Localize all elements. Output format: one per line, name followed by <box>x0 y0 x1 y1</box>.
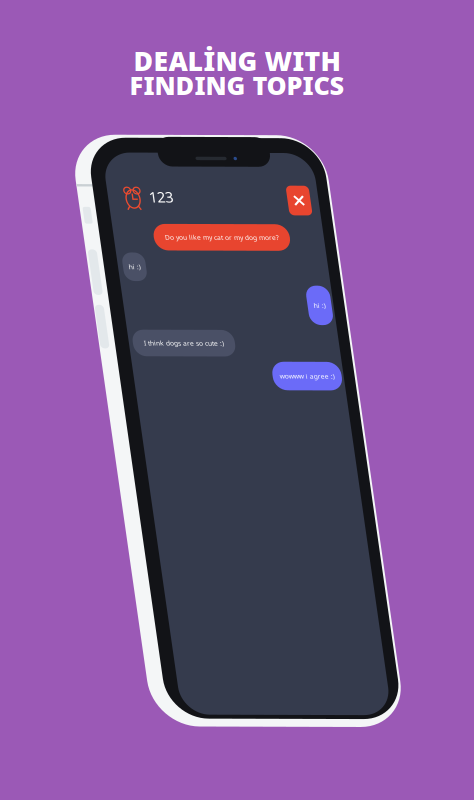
staticText: DEALİNG WITH <box>133 43 340 78</box>
staticText: FINDING TOPICS <box>129 68 344 102</box>
staticText: I think dogs are so cute :) <box>15 188 95 197</box>
staticText: wowww i agree :) <box>146 221 201 230</box>
staticText: hi :) <box>190 149 202 158</box>
button[interactable]: Close <box>179 33 202 63</box>
staticText: Do you like my cat or my dog more? <box>51 81 165 90</box>
